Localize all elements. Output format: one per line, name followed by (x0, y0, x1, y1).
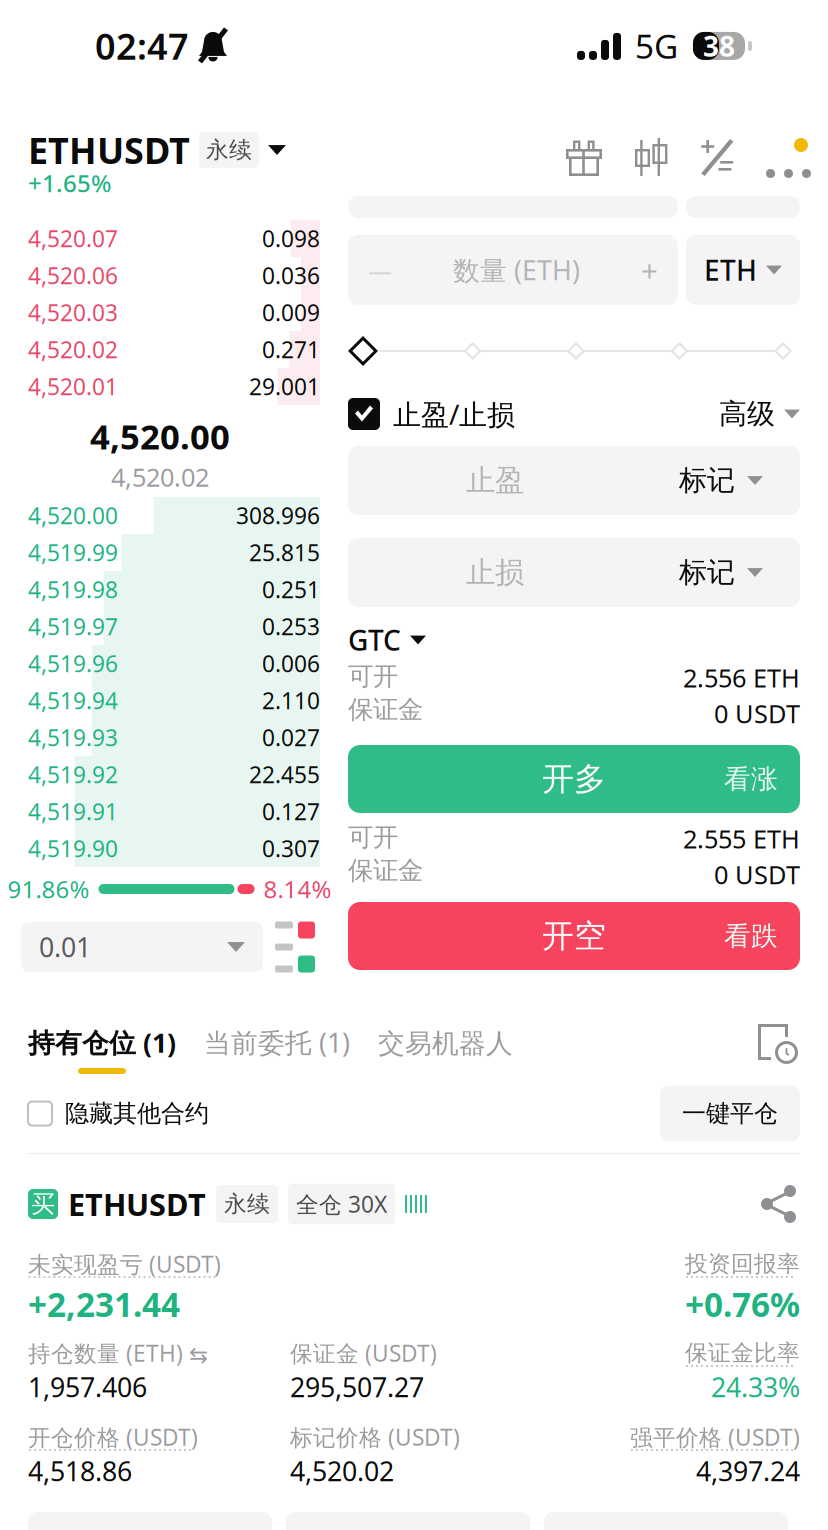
button[interactable]: 高级 (719, 397, 800, 431)
staticText: 4,520.00 (90, 413, 230, 459)
button[interactable]: 隐藏其他合约 (28, 1099, 209, 1128)
button[interactable]: 4,520.00 (0, 497, 320, 534)
staticText: 0 USDT (714, 857, 800, 891)
button[interactable]: 开多 (348, 745, 800, 813)
button[interactable]: 开空 (348, 902, 800, 970)
button[interactable]: 4,519.92 (0, 756, 320, 793)
button[interactable]: 止盈/止损 (348, 395, 515, 433)
staticText: 4,519.99 (28, 537, 118, 567)
button[interactable]: ETHUSDT (28, 108, 286, 196)
staticText: 4,519.96 (28, 648, 118, 678)
button[interactable]: GTC (348, 625, 800, 655)
button[interactable]: 当前委托 (1) (204, 1025, 350, 1074)
staticText: 全仓 30X (296, 1189, 387, 1219)
staticText: 0.006 (262, 648, 320, 678)
staticText: 永续 (206, 136, 252, 164)
button[interactable]: 标记 (642, 446, 800, 515)
staticText: 2.556 ETH (683, 661, 800, 694)
button[interactable]: Order history (758, 1024, 800, 1074)
staticText: 持仓数量 (ETH) ⇆ (28, 1338, 208, 1368)
staticText: ETH (704, 251, 757, 289)
staticText: +1.65% (28, 167, 111, 199)
staticText: 交易机器人 (378, 1027, 513, 1060)
button[interactable]: 4,520.06 (0, 257, 320, 294)
staticText: 0.307 (262, 833, 320, 863)
staticText: 4,519.97 (28, 611, 118, 641)
button[interactable]: 标记 (642, 538, 800, 607)
staticText: 标记价格 (USDT) (290, 1422, 460, 1452)
staticText: 可开 (348, 661, 398, 692)
staticText: 0.098 (262, 223, 320, 253)
staticText: 未实现盈亏 (USDT) (28, 1249, 221, 1279)
button[interactable]: 4,519.90 (0, 830, 320, 867)
button[interactable]: More (766, 138, 811, 178)
staticText: GTC (348, 621, 401, 659)
staticText: 24.33% (711, 1369, 800, 1405)
staticText: 5G (635, 24, 678, 68)
staticText: 25.815 (249, 537, 320, 567)
button[interactable]: 一键平仓 (660, 1086, 800, 1141)
button[interactable]: 交易机器人 (378, 1027, 513, 1074)
staticText: 4,519.93 (28, 722, 118, 752)
button[interactable]: 4,519.99 (0, 534, 320, 571)
button[interactable]: Calculator (700, 138, 735, 178)
staticText: 4,520.03 (28, 297, 118, 327)
staticText: 看跌 (724, 920, 778, 952)
staticText: 4,520.02 (111, 460, 209, 494)
staticText: 保证金 (USDT) (290, 1338, 437, 1368)
staticText: 4,520.07 (28, 223, 118, 253)
staticText: 4,520.06 (28, 260, 118, 290)
staticText: 2.110 (262, 685, 320, 715)
staticText: 0.127 (262, 796, 320, 826)
button[interactable]: 0.01 (21, 922, 263, 972)
staticText: 1,957.406 (28, 1369, 147, 1405)
staticText: 高级 (719, 397, 775, 431)
staticText: 止盈 (466, 462, 524, 498)
staticText: 保证金 (348, 694, 423, 725)
staticText: 8.14% (263, 873, 331, 905)
staticText: 一键平仓 (682, 1099, 778, 1128)
staticText: — (368, 254, 392, 286)
button[interactable]: 4,519.97 (0, 608, 320, 645)
staticText: 0.027 (262, 722, 320, 752)
button[interactable]: 4,519.98 (0, 571, 320, 608)
button[interactable]: 4,520.07 (0, 220, 320, 257)
staticText: 数量 (ETH) (453, 252, 580, 288)
staticText: 强平价格 (USDT) (630, 1422, 800, 1452)
staticText: + (641, 250, 658, 289)
staticText: 投资回报率 (685, 1250, 800, 1278)
staticText: 买 (31, 1189, 55, 1219)
staticText: 开空 (542, 916, 606, 956)
button[interactable]: Share (758, 1183, 800, 1225)
button[interactable]: 4,519.93 (0, 719, 320, 756)
staticText: 0.009 (262, 297, 320, 327)
button[interactable]: Depth view (275, 920, 315, 973)
button[interactable]: 4,520.02 (0, 331, 320, 368)
button[interactable]: 4,520.01 (0, 368, 320, 405)
staticText: ETHUSDT (28, 126, 190, 174)
staticText: 4,518.86 (28, 1453, 132, 1489)
staticText: 保证金 (348, 855, 423, 886)
staticText: 38 (703, 27, 735, 64)
button[interactable]: 4,520.03 (0, 294, 320, 331)
staticText: 止盈/止损 (393, 395, 515, 433)
staticText: 29.001 (249, 371, 320, 401)
button[interactable]: 4,519.94 (0, 682, 320, 719)
button[interactable]: 4,519.96 (0, 645, 320, 682)
staticText: 4,397.24 (696, 1453, 800, 1489)
staticText: 可开 (348, 822, 398, 853)
staticText: 4,519.91 (28, 796, 118, 826)
button[interactable]: 4,519.91 (0, 793, 320, 830)
staticText: 4,520.02 (28, 334, 118, 364)
staticText: 永续 (224, 1190, 270, 1218)
button[interactable]: ETH (686, 235, 800, 305)
button[interactable]: Rewards (565, 138, 603, 178)
staticText: 4,520.00 (28, 500, 118, 530)
staticText: 0.251 (262, 574, 320, 604)
staticText: 2.555 ETH (683, 822, 800, 855)
button[interactable]: Chart (634, 138, 669, 178)
staticText: 当前委托 (1) (204, 1025, 350, 1060)
